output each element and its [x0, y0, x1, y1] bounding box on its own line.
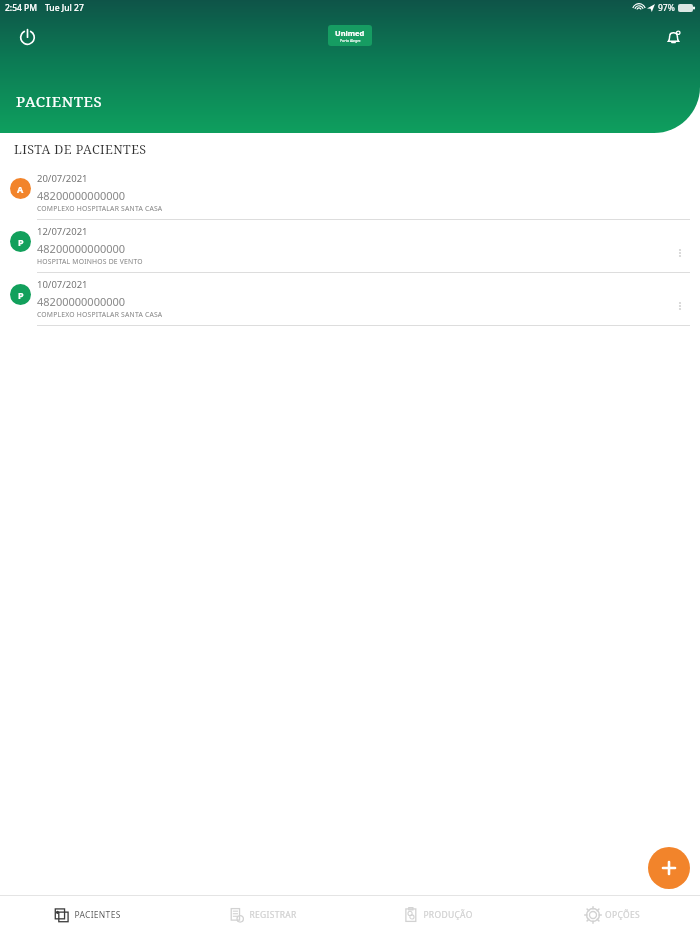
staticText: Unimed: [335, 28, 365, 38]
staticText: Tue Jul 27: [45, 2, 84, 14]
staticText: P: [18, 236, 24, 248]
button[interactable]: P: [0, 220, 700, 273]
staticText: REGISTRAR: [249, 909, 297, 921]
staticText: 48200000000000: [37, 241, 126, 256]
button[interactable]: Mais opções: [670, 243, 690, 263]
staticText: 20/07/2021: [37, 172, 88, 185]
button[interactable]: PRODUÇÃO: [350, 896, 525, 934]
staticText: 12/07/2021: [37, 225, 88, 238]
button[interactable]: Sair: [12, 22, 42, 52]
button[interactable]: P: [0, 273, 700, 326]
staticText: 2:54 PM: [5, 2, 38, 14]
staticText: PRODUÇÃO: [423, 909, 473, 921]
button[interactable]: OPÇÕES: [525, 896, 700, 934]
button[interactable]: PACIENTES: [0, 896, 175, 934]
staticText: HOSPITAL MOINHOS DE VENTO: [37, 257, 143, 266]
button[interactable]: A: [0, 167, 700, 220]
staticText: 97%: [658, 2, 675, 14]
staticText: Porto Alegre: [340, 38, 361, 43]
staticText: A: [17, 183, 24, 195]
staticText: COMPLEXO HOSPITALAR SANTA CASA: [37, 310, 163, 319]
staticText: 48200000000000: [37, 188, 126, 203]
button[interactable]: Mais opções: [670, 296, 690, 316]
staticText: 10/07/2021: [37, 278, 88, 291]
staticText: P: [18, 289, 24, 301]
staticText: PACIENTES: [16, 91, 103, 111]
button[interactable]: REGISTRAR: [175, 896, 350, 934]
button[interactable]: Notificações: [658, 22, 688, 52]
staticText: PACIENTES: [74, 909, 121, 921]
staticText: LISTA DE PACIENTES: [14, 141, 147, 158]
staticText: OPÇÕES: [605, 909, 640, 921]
staticText: COMPLEXO HOSPITALAR SANTA CASA: [37, 204, 163, 213]
staticText: 48200000000000: [37, 294, 126, 309]
button[interactable]: Adicionar paciente: [648, 847, 690, 889]
